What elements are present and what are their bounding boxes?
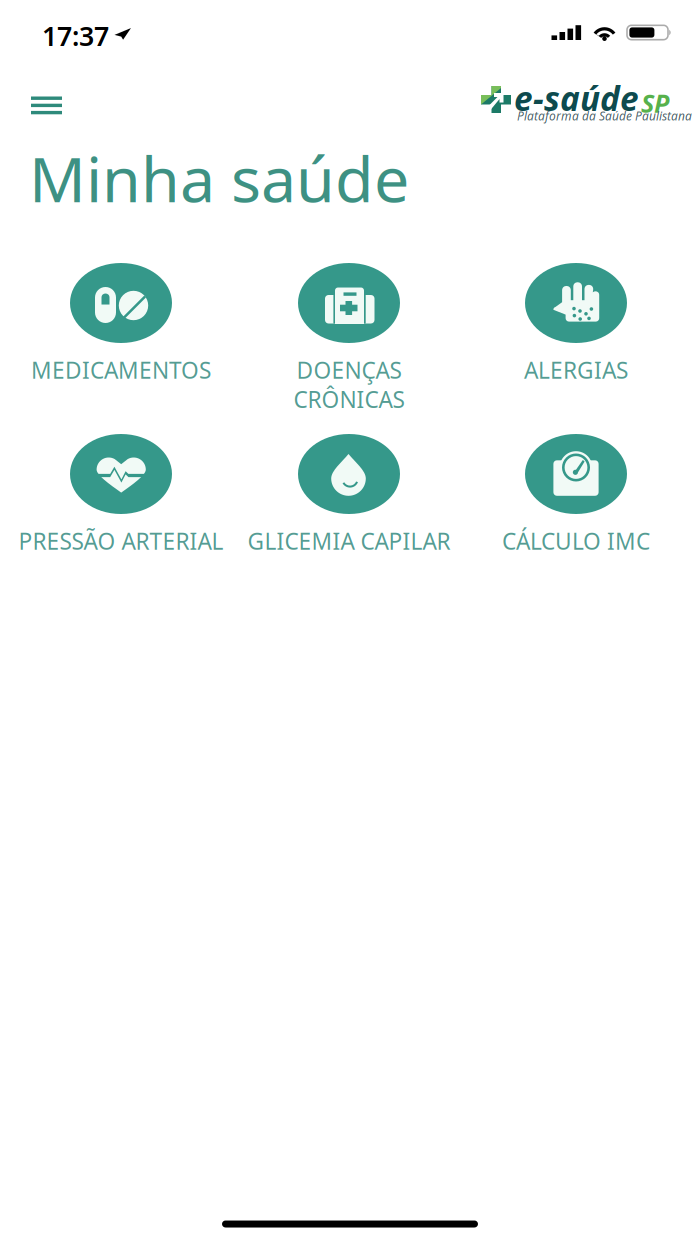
staticText: MEDICAMENTOS bbox=[31, 355, 211, 385]
button[interactable]: Doenças crônicas bbox=[236, 263, 462, 385]
staticText: SP bbox=[641, 86, 669, 120]
button[interactable]: Alergias bbox=[463, 263, 689, 385]
staticText: 17:37 bbox=[42, 18, 109, 53]
button[interactable]: Pressão arterial bbox=[8, 434, 234, 556]
staticText: DOENÇAS bbox=[296, 355, 401, 385]
staticText: Minha saúde bbox=[29, 136, 409, 220]
button[interactable]: Medicamentos bbox=[8, 263, 234, 385]
button[interactable]: Cálculo IMC bbox=[463, 434, 689, 556]
staticText: Plataforma da Saúde Paulistana bbox=[517, 108, 692, 124]
staticText: e-saúde bbox=[514, 76, 639, 120]
staticText: PRESSÃO ARTERIAL bbox=[18, 526, 223, 556]
staticText: GLICEMIA CAPILAR bbox=[247, 526, 450, 556]
button[interactable]: Menu bbox=[15, 80, 78, 130]
staticText: CRÔNICAS bbox=[293, 384, 404, 414]
staticText: ALERGIAS bbox=[524, 355, 628, 385]
button[interactable]: Glicemia capilar bbox=[236, 434, 462, 556]
staticText: CÁLCULO IMC bbox=[502, 526, 650, 556]
